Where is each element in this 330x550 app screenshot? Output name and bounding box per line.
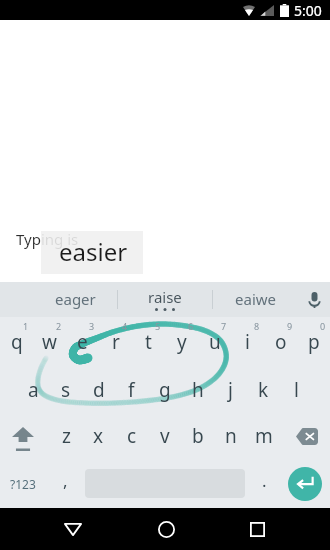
staticText: b <box>192 423 204 449</box>
button[interactable]: easier <box>41 231 143 274</box>
staticText: ?123 <box>10 476 36 492</box>
button[interactable]: 8 <box>231 317 264 367</box>
staticText: k <box>258 377 269 403</box>
button[interactable]: 3 <box>66 317 99 367</box>
button[interactable]: Backspace <box>280 413 330 459</box>
staticText: a <box>28 377 39 403</box>
button[interactable]: eager <box>0 282 117 317</box>
button[interactable]: Voice input <box>298 282 330 317</box>
staticText: q <box>11 329 23 355</box>
button[interactable]: 2 <box>33 317 66 367</box>
button[interactable]: x <box>82 413 115 459</box>
button[interactable]: n <box>214 413 247 459</box>
button[interactable]: 1 <box>0 317 33 367</box>
staticText: 3 <box>89 320 95 332</box>
button[interactable]: 4 <box>99 317 132 367</box>
button[interactable]: m <box>247 413 280 459</box>
button[interactable]: j <box>214 367 247 413</box>
staticText: z <box>62 423 71 449</box>
staticText: t <box>145 329 152 355</box>
button[interactable]: l <box>280 367 313 413</box>
button[interactable]: 9 <box>264 317 297 367</box>
button[interactable]: Back <box>46 508 100 550</box>
staticText: raise <box>148 287 182 307</box>
button[interactable]: Recents <box>230 508 284 550</box>
staticText: 5:00 <box>294 1 322 20</box>
button[interactable]: Home <box>139 508 193 550</box>
button[interactable]: h <box>181 367 214 413</box>
button[interactable]: d <box>82 367 115 413</box>
staticText: 8 <box>254 320 260 332</box>
staticText: x <box>93 423 104 449</box>
staticText: r <box>112 329 120 355</box>
staticText: g <box>159 377 171 403</box>
staticText: i <box>245 329 250 355</box>
staticText: c <box>127 423 137 449</box>
button[interactable]: g <box>148 367 181 413</box>
staticText: e <box>77 329 88 355</box>
staticText: p <box>308 329 320 355</box>
button[interactable]: s <box>49 367 82 413</box>
staticText: w <box>42 329 57 355</box>
staticText: 2 <box>56 320 62 332</box>
button[interactable]: , <box>46 459 85 508</box>
staticText: v <box>160 423 170 449</box>
staticText: , <box>63 469 68 492</box>
button[interactable]: raise <box>118 282 212 317</box>
button[interactable]: 7 <box>198 317 231 367</box>
button[interactable]: v <box>148 413 181 459</box>
button[interactable]: c <box>115 413 148 459</box>
staticText: l <box>294 377 299 403</box>
staticText: j <box>228 377 233 403</box>
staticText: h <box>192 377 204 403</box>
button[interactable]: eaiwe <box>213 282 298 317</box>
button[interactable]: a <box>17 367 49 413</box>
button[interactable]: f <box>115 367 148 413</box>
staticText: 6 <box>188 320 194 332</box>
button[interactable]: 6 <box>165 317 198 367</box>
staticText: y <box>177 329 187 355</box>
staticText: . <box>262 469 267 492</box>
button[interactable]: 0 <box>297 317 330 367</box>
button[interactable]: 5 <box>132 317 165 367</box>
staticText: f <box>128 377 135 403</box>
button[interactable]: Enter <box>284 459 330 508</box>
staticText: 9 <box>287 320 293 332</box>
button[interactable]: Shift <box>0 413 50 459</box>
staticText: 1 <box>23 320 29 332</box>
staticText: u <box>209 329 221 355</box>
button[interactable]: z <box>50 413 82 459</box>
button[interactable]: ?123 <box>0 459 46 508</box>
staticText: 4 <box>122 320 128 332</box>
staticText: m <box>255 423 273 449</box>
staticText: s <box>61 377 71 403</box>
button[interactable]: b <box>181 413 214 459</box>
staticText: easier <box>59 235 128 268</box>
staticText: 5 <box>155 320 161 332</box>
staticText: 0 <box>320 320 326 332</box>
button[interactable]: . <box>245 459 284 508</box>
button[interactable]: k <box>247 367 280 413</box>
staticText: o <box>275 329 287 355</box>
staticText: n <box>225 423 237 449</box>
staticText: d <box>93 377 105 403</box>
staticText: eager <box>55 289 96 309</box>
staticText: 7 <box>221 320 227 332</box>
staticText: Typing is <box>16 229 79 249</box>
staticText: eaiwe <box>235 289 276 309</box>
